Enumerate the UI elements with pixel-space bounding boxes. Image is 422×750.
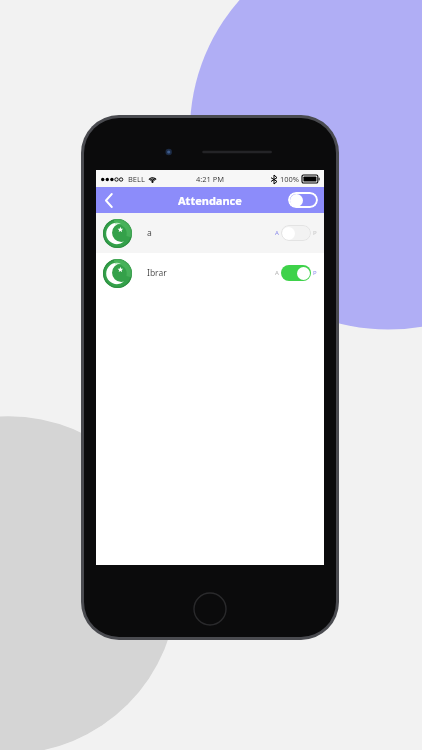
button[interactable]: a	[96, 213, 324, 253]
button[interactable]: Ibrar	[96, 253, 324, 293]
staticText: P	[313, 229, 317, 237]
staticText: P	[313, 269, 317, 277]
button[interactable]: Absent	[281, 225, 311, 241]
staticText: Attendance	[178, 193, 242, 208]
staticText: a	[147, 227, 152, 239]
staticText: 100%	[280, 174, 300, 184]
staticText: BELL	[128, 174, 145, 184]
button[interactable]: Present	[281, 265, 311, 281]
staticText: A	[275, 269, 279, 277]
staticText: 4:21 PM	[196, 174, 225, 184]
button[interactable]: Toggle all attendance	[288, 192, 318, 208]
staticText: Ibrar	[147, 267, 167, 279]
staticText: A	[275, 229, 279, 237]
button[interactable]: Back	[98, 189, 120, 211]
